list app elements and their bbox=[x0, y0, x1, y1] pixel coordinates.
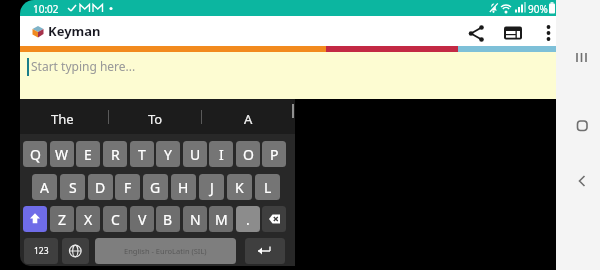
staticText: . bbox=[246, 210, 250, 229]
staticText: M bbox=[215, 210, 228, 229]
staticText: F bbox=[124, 178, 132, 197]
button[interactable]: Z bbox=[50, 206, 74, 232]
button[interactable] bbox=[503, 25, 523, 41]
staticText: H bbox=[178, 178, 189, 197]
button[interactable] bbox=[573, 172, 591, 190]
staticText: X bbox=[84, 210, 93, 229]
button[interactable]: C bbox=[103, 206, 127, 232]
staticText: U bbox=[190, 145, 201, 164]
staticText: W bbox=[55, 145, 69, 164]
staticText: T bbox=[138, 145, 146, 164]
staticText: Y bbox=[164, 145, 172, 164]
button[interactable]: E bbox=[76, 141, 100, 167]
button[interactable]: X bbox=[76, 206, 100, 232]
staticText: A bbox=[244, 110, 253, 128]
staticText: A bbox=[40, 178, 49, 197]
button[interactable]: J bbox=[199, 174, 224, 200]
staticText: 10:02 bbox=[33, 2, 59, 15]
button[interactable]: K bbox=[227, 174, 252, 200]
staticText: I bbox=[219, 145, 224, 164]
button[interactable]: A bbox=[32, 174, 57, 200]
button[interactable]: D bbox=[88, 174, 113, 200]
staticText: C bbox=[111, 210, 120, 229]
staticText: J bbox=[210, 178, 214, 197]
staticText: 123 bbox=[34, 245, 49, 257]
button[interactable]: L bbox=[255, 174, 280, 200]
staticText: O bbox=[243, 145, 254, 164]
staticText: To bbox=[148, 110, 163, 128]
button[interactable]: R bbox=[103, 141, 127, 167]
staticText: S bbox=[69, 178, 77, 197]
button[interactable]: S bbox=[60, 174, 85, 200]
staticText: V bbox=[138, 210, 147, 229]
button[interactable] bbox=[541, 22, 556, 44]
button[interactable]: O bbox=[236, 141, 260, 167]
button[interactable]: F bbox=[115, 174, 140, 200]
button[interactable]: N bbox=[183, 206, 207, 232]
staticText: R bbox=[111, 145, 120, 164]
button[interactable] bbox=[245, 238, 285, 264]
button[interactable]: V bbox=[130, 206, 154, 232]
button[interactable]: Y bbox=[156, 141, 180, 167]
button[interactable]: M bbox=[209, 206, 233, 232]
button[interactable] bbox=[20, 52, 556, 99]
staticText: Start typing here... bbox=[31, 58, 136, 74]
button[interactable]: U bbox=[183, 141, 207, 167]
staticText: K bbox=[235, 178, 244, 197]
button[interactable]: The bbox=[27, 108, 97, 130]
staticText: 90% bbox=[528, 2, 548, 15]
button[interactable] bbox=[62, 238, 89, 264]
staticText: English - EuroLatin (SIL) bbox=[124, 246, 207, 256]
button[interactable]: English - EuroLatin (SIL) bbox=[95, 238, 236, 264]
staticText: D bbox=[95, 178, 106, 197]
staticText: G bbox=[150, 178, 161, 197]
button[interactable]: . bbox=[236, 206, 260, 232]
button[interactable]: Q bbox=[23, 141, 47, 167]
staticText: Z bbox=[58, 210, 67, 229]
staticText: E bbox=[84, 145, 92, 164]
staticText: P bbox=[270, 145, 279, 164]
button[interactable]: B bbox=[156, 206, 180, 232]
staticText: Q bbox=[30, 145, 41, 164]
button[interactable] bbox=[23, 206, 47, 232]
button[interactable]: G bbox=[143, 174, 168, 200]
button[interactable] bbox=[262, 206, 286, 232]
button[interactable]: P bbox=[262, 141, 286, 167]
button[interactable] bbox=[572, 50, 592, 66]
button[interactable] bbox=[573, 118, 591, 134]
staticText: The bbox=[51, 110, 74, 128]
button[interactable]: I bbox=[209, 141, 233, 167]
staticText: L bbox=[264, 178, 272, 197]
button[interactable]: 123 bbox=[24, 238, 58, 264]
button[interactable]: A bbox=[213, 108, 283, 130]
staticText: N bbox=[190, 210, 201, 229]
button[interactable]: T bbox=[130, 141, 154, 167]
staticText: Keyman bbox=[48, 22, 101, 40]
button[interactable]: W bbox=[50, 141, 74, 167]
button[interactable]: H bbox=[171, 174, 196, 200]
button[interactable] bbox=[465, 22, 487, 44]
button[interactable]: To bbox=[120, 108, 190, 130]
staticText: B bbox=[163, 210, 173, 229]
